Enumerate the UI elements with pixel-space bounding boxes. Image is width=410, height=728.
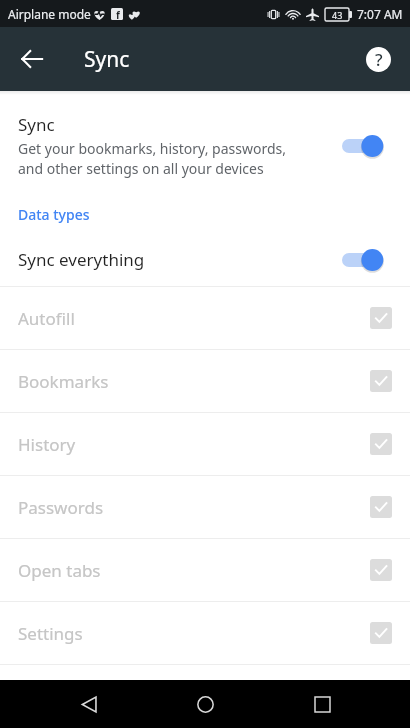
button[interactable]: Autofill <box>0 287 410 349</box>
button[interactable]: Back <box>61 680 117 728</box>
button[interactable]: Sync <box>0 95 410 196</box>
button[interactable]: Help <box>354 35 402 83</box>
staticText: Passwords <box>18 496 370 519</box>
button[interactable]: Bookmarks <box>0 350 410 412</box>
button[interactable]: Recent apps <box>294 680 350 728</box>
staticText: Open tabs <box>18 559 370 582</box>
button[interactable]: Sync everything <box>0 233 410 286</box>
staticText: Get your bookmarks, history, passwords, … <box>18 139 286 178</box>
button[interactable]: Navigate up <box>8 35 56 83</box>
staticText: Bookmarks <box>18 370 370 393</box>
staticText: Data types <box>18 205 90 224</box>
staticText: 7:07 AM <box>357 6 403 22</box>
staticText: ? <box>375 48 383 71</box>
button[interactable]: History <box>0 413 410 475</box>
staticText: Autofill <box>18 307 370 330</box>
button[interactable]: Passwords <box>0 476 410 538</box>
staticText: Settings <box>18 622 370 645</box>
staticText: Sync everything <box>18 248 342 271</box>
button[interactable]: Open tabs <box>0 539 410 601</box>
staticText: History <box>18 433 370 456</box>
staticText: Airplane mode <box>8 6 91 22</box>
staticText: 43 <box>332 9 343 21</box>
staticText: Sync <box>18 113 55 136</box>
staticText: Sync <box>84 45 130 74</box>
button[interactable]: Home <box>177 680 233 728</box>
staticText: f <box>116 8 120 19</box>
button[interactable]: Settings <box>0 602 410 664</box>
